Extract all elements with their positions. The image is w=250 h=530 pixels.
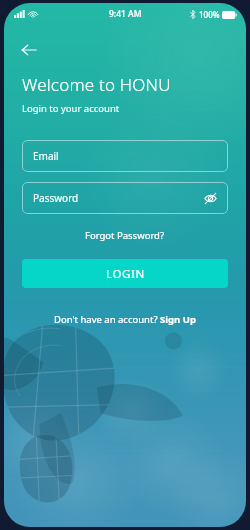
staticText: Email <box>33 149 59 163</box>
staticText: 9:41 AM <box>109 8 142 20</box>
button[interactable]: Back <box>14 35 44 65</box>
staticText: Don't have an account? <box>54 313 160 326</box>
button[interactable]: Show password <box>200 188 220 208</box>
button[interactable]: Forgot Password? <box>79 226 171 245</box>
staticText: Sign Up <box>160 313 196 326</box>
staticText: Password <box>33 191 79 205</box>
staticText: Login to your account <box>22 102 120 115</box>
button[interactable]: Don't have an account? <box>48 310 202 329</box>
staticText: Welcome to HONU <box>22 73 171 96</box>
button[interactable]: LOGIN <box>22 259 228 288</box>
button[interactable]: Email <box>22 140 228 172</box>
button[interactable]: Password <box>22 182 228 214</box>
staticText: Forgot Password? <box>85 229 165 242</box>
staticText: 100% <box>199 9 220 20</box>
staticText: LOGIN <box>106 266 145 282</box>
